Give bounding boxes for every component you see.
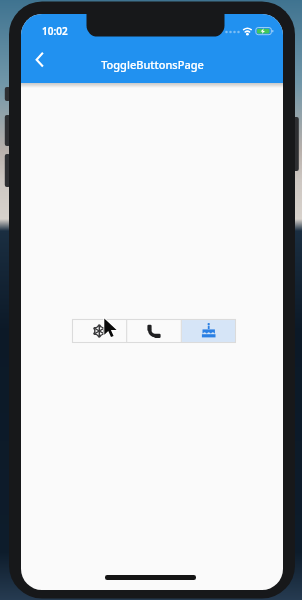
staticText: ToggleButtonsPage xyxy=(101,57,204,72)
button[interactable] xyxy=(182,319,236,343)
button[interactable] xyxy=(26,48,52,74)
button[interactable] xyxy=(127,319,182,343)
button[interactable] xyxy=(72,319,127,343)
staticText: 10:02 xyxy=(42,24,68,37)
